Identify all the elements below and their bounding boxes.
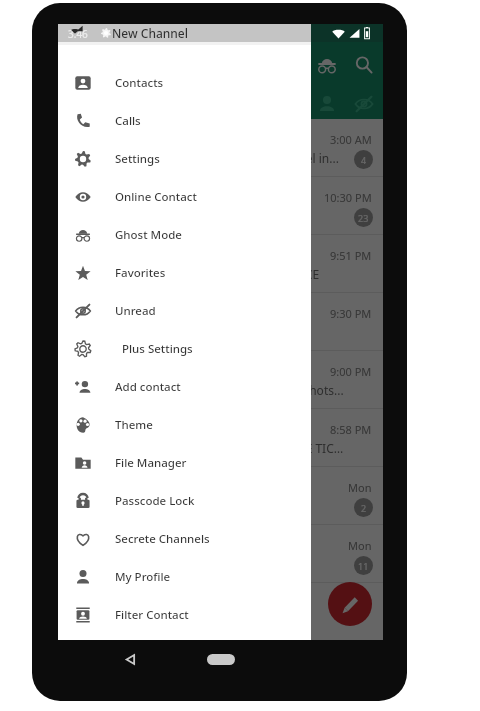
staticText: 3:46 [68,27,88,41]
button[interactable]: Contacts tab [317,94,337,114]
button[interactable]: Favorites [58,254,311,292]
staticText: Calls [115,113,141,129]
staticText: 3:00 AM [330,132,372,147]
staticText: 10:30 PM [324,190,372,205]
button[interactable]: Tech Updates [58,177,383,234]
button[interactable]: Ghost mode [317,55,337,75]
staticText: Contacts [115,75,164,91]
button[interactable]: Add contact [58,368,311,406]
staticText: Secrete Channels [115,531,210,547]
staticText: WE NOW SUPPORT DOUBLE BLUE TICK... [122,440,345,456]
button[interactable]: Contacts [58,64,311,102]
button[interactable]: Work Channel [58,525,383,582]
staticText: Online Contact [115,189,197,205]
staticText: 9:30 PM [330,306,372,321]
button[interactable]: File Manager [58,444,311,482]
button[interactable]: Home [207,654,235,665]
staticText: Filter Contact [115,607,189,623]
button[interactable]: Online Contact [58,178,311,216]
button[interactable]: Status Saver [58,235,383,292]
staticText: Ghost Mode [115,227,182,243]
staticText: Plus Settings [122,341,193,357]
staticText: Work Channel [122,536,210,554]
button[interactable]: Support Team [58,409,383,466]
staticText: You are invited to join this channel in.… [122,150,339,166]
staticText: 23 [358,212,369,224]
button[interactable]: Ghost Mode [58,216,311,254]
button[interactable]: Unread tab [354,94,374,114]
button[interactable]: Family Group [58,467,383,524]
button[interactable]: Calls [58,102,311,140]
button[interactable]: Back [124,653,137,666]
button[interactable]: New message [328,582,372,626]
staticText: Favorites [115,265,166,281]
staticText: New Channel [112,25,188,41]
staticText: Unread [115,303,156,319]
staticText: 4 [361,154,367,166]
button[interactable]: Secrete Channels [58,520,311,558]
staticText: Passcode Lock [115,493,195,509]
staticText: 9:51 PM [330,248,372,263]
button[interactable]: Alex Morgan [58,293,383,350]
staticText: 2 [361,502,367,514]
button[interactable]: Photography [58,351,383,408]
staticText: 9:00 PM [330,364,372,379]
button[interactable]: Filter Contact [58,596,311,634]
staticText: Tech Updates [122,188,206,206]
staticText: Settings [115,151,160,167]
button[interactable]: Plus Settings [58,330,311,368]
staticText: Theme [115,417,153,433]
staticText: Mon [348,538,372,553]
button[interactable]: My Profile [58,558,311,596]
staticText: 8:58 PM [330,422,372,437]
staticText: Please send me the tempora... [122,498,293,514]
button[interactable]: Search [354,55,374,75]
staticText: 11 [358,560,369,572]
button[interactable]: Passcode Lock [58,482,311,520]
staticText: Alex Morgan [122,304,201,322]
button[interactable]: Unread [58,292,311,330]
staticText: Mon [348,480,372,495]
button[interactable]: Settings [58,140,311,178]
staticText: My Profile [115,569,171,585]
staticText: Please have a look at these new shots... [122,382,344,398]
staticText: File Manager [115,455,187,471]
button[interactable]: Theme [58,406,311,444]
button[interactable]: Plus Messenger [58,119,383,176]
staticText: Support Team [122,420,209,438]
staticText: Add contact [115,379,181,395]
staticText: SHARE WITH US YOUR EXPERIENCE [122,266,320,282]
